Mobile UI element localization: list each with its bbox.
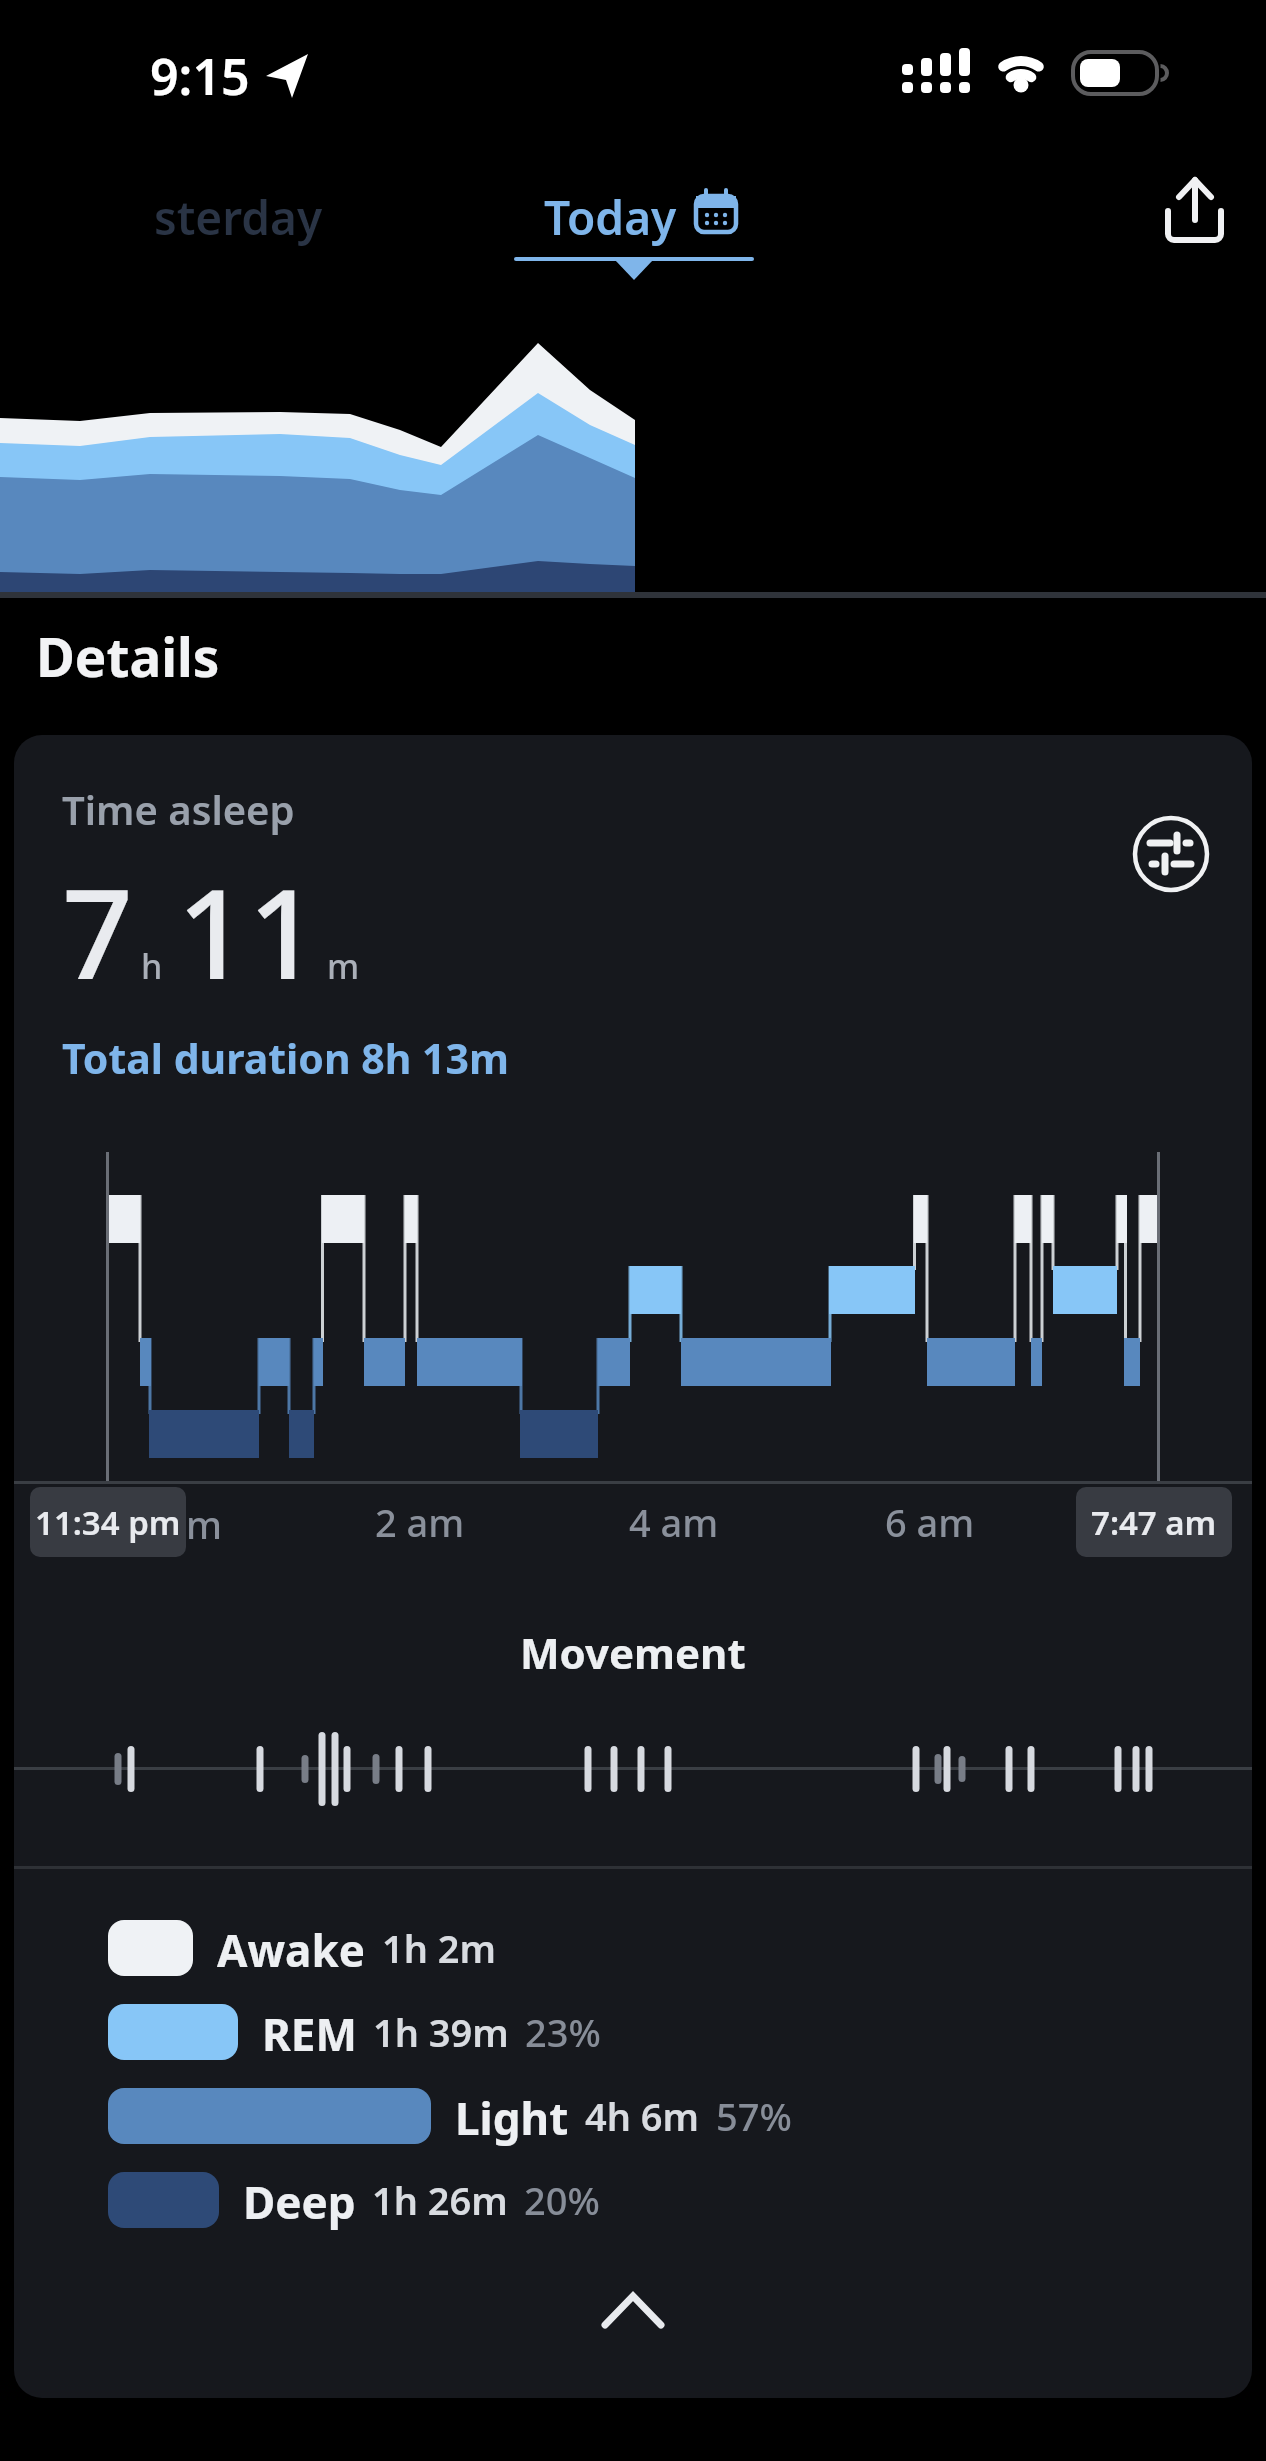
staticText: m bbox=[327, 943, 360, 989]
button[interactable]: Deep bbox=[108, 2172, 600, 2228]
staticText: 57% bbox=[716, 2090, 792, 2142]
button[interactable] bbox=[1130, 814, 1212, 896]
button[interactable] bbox=[1150, 160, 1250, 260]
staticText: 1h 26m bbox=[372, 2174, 508, 2226]
staticText: REM bbox=[262, 2004, 357, 2060]
staticText: m bbox=[186, 1498, 222, 1550]
button[interactable]: REM bbox=[108, 2004, 601, 2060]
staticText: 2 am bbox=[375, 1496, 465, 1548]
staticText: Time asleep bbox=[62, 782, 295, 836]
button[interactable]: Light bbox=[108, 2088, 792, 2144]
staticText: 23% bbox=[525, 2006, 601, 2058]
staticText: 4h 6m bbox=[585, 2090, 700, 2142]
button[interactable]: Today bbox=[510, 180, 750, 250]
staticText: 11 bbox=[177, 846, 319, 1015]
staticText: 1h 39m bbox=[373, 2006, 509, 2058]
staticText: Details bbox=[36, 620, 220, 692]
staticText: 7 bbox=[62, 846, 133, 1015]
staticText: 1h 2m bbox=[382, 1922, 497, 1974]
button[interactable]: Awake bbox=[108, 1920, 497, 1976]
staticText: 6 am bbox=[885, 1496, 975, 1548]
staticText: Deep bbox=[243, 2172, 356, 2228]
staticText: Total duration 8h 13m bbox=[62, 1030, 509, 1086]
staticText: 9:15 bbox=[150, 42, 250, 110]
staticText: Movement bbox=[520, 1624, 746, 1681]
staticText: Today bbox=[544, 186, 677, 249]
staticText: Awake bbox=[217, 1920, 366, 1976]
button[interactable]: sterday bbox=[120, 180, 340, 250]
staticText: 11:34 pm bbox=[35, 1500, 181, 1545]
staticText: h bbox=[141, 943, 163, 989]
staticText: 20% bbox=[524, 2174, 600, 2226]
staticText: 4 am bbox=[629, 1496, 719, 1548]
staticText: 7:47 am bbox=[1091, 1500, 1217, 1545]
button[interactable] bbox=[585, 2276, 681, 2346]
staticText: sterday bbox=[154, 186, 323, 249]
staticText: Light bbox=[455, 2088, 569, 2144]
